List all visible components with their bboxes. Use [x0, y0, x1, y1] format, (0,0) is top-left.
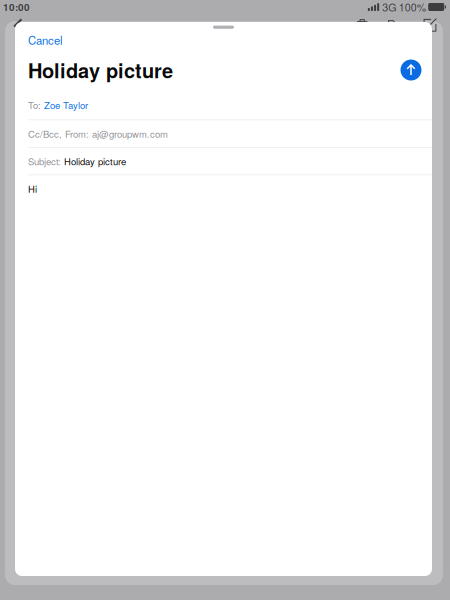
button[interactable]: Cancel — [15, 30, 73, 54]
staticText: Cc/Bcc, From: — [28, 127, 92, 140]
staticText: Holiday picture — [64, 154, 126, 168]
button[interactable]: Back — [14, 18, 23, 33]
staticText: Zoe Taylor — [44, 98, 88, 112]
button[interactable]: Move to folder — [388, 18, 403, 32]
staticText: To: — [28, 98, 44, 112]
staticText: Cancel — [28, 32, 63, 48]
staticText: 3G — [382, 0, 396, 15]
button[interactable]: Delete message — [356, 18, 368, 32]
staticText: 100% — [399, 0, 426, 15]
staticText: 10:00 — [3, 0, 30, 14]
staticText: Subject: — [28, 154, 64, 168]
staticText: Hi — [28, 182, 37, 195]
button[interactable]: Send — [396, 55, 426, 85]
staticText: Holiday picture — [28, 56, 173, 84]
staticText: aj@groupwm.com — [92, 127, 168, 140]
button[interactable]: Compose — [423, 18, 437, 32]
